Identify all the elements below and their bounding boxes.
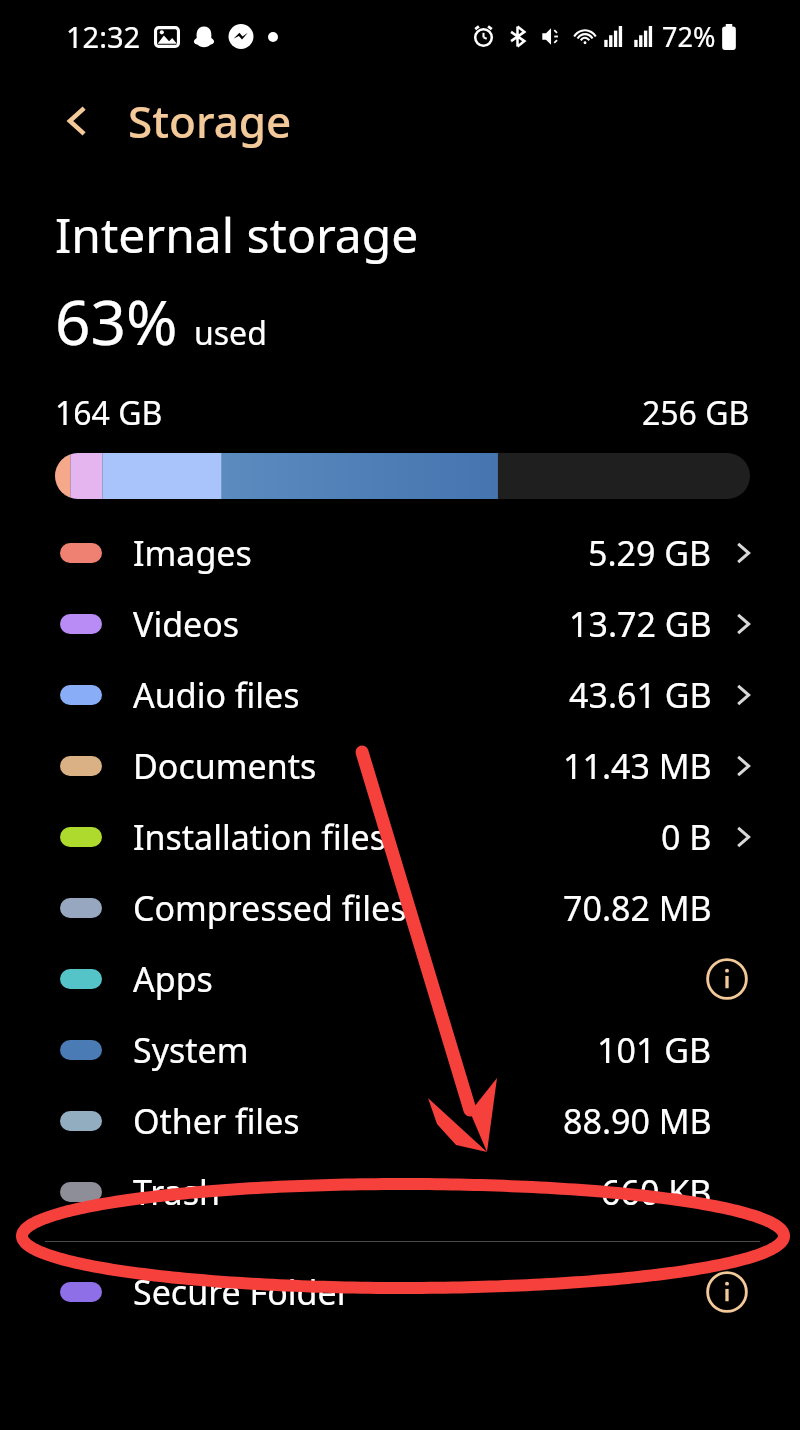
staticText: 88.90 MB <box>563 1098 712 1144</box>
staticText: Secure Folder <box>133 1269 351 1315</box>
staticText: 0 B <box>661 814 712 860</box>
staticText: Videos <box>133 601 240 647</box>
staticText: Other files <box>133 1098 300 1144</box>
button[interactable]: Documents <box>0 730 800 801</box>
staticText: Internal storage <box>55 202 419 267</box>
staticText: Audio files <box>133 672 300 718</box>
button[interactable]: Compressed files <box>0 872 800 943</box>
button[interactable]: System <box>0 1014 800 1085</box>
staticText: System <box>133 1027 249 1073</box>
staticText: 660 KB <box>601 1169 712 1215</box>
staticText: 63% <box>55 279 178 363</box>
button[interactable]: Apps <box>0 943 800 1014</box>
staticText: 72% <box>662 18 716 55</box>
button[interactable]: Info about Apps <box>700 952 754 1006</box>
staticText: Trash <box>133 1169 220 1215</box>
staticText: 70.82 MB <box>563 885 712 931</box>
staticText: 13.72 GB <box>569 601 712 647</box>
staticText: Installation files <box>133 814 386 860</box>
staticText: Compressed files <box>133 885 407 931</box>
staticText: Storage <box>128 91 292 151</box>
button[interactable]: Images <box>0 517 800 588</box>
button[interactable]: Secure Folder <box>0 1256 800 1327</box>
staticText: 101 GB <box>597 1027 712 1073</box>
button[interactable]: Back <box>50 93 106 149</box>
button[interactable]: Installation files <box>0 801 800 872</box>
staticText: 5.29 GB <box>588 530 712 576</box>
button[interactable]: Audio files <box>0 659 800 730</box>
button[interactable]: Info about Secure Folder <box>700 1265 754 1319</box>
staticText: used <box>194 311 267 355</box>
staticText: 43.61 GB <box>569 672 712 718</box>
button[interactable]: Trash <box>0 1156 800 1227</box>
button[interactable]: Videos <box>0 588 800 659</box>
staticText: Images <box>133 530 252 576</box>
staticText: 256 GB <box>642 391 750 435</box>
staticText: 12:32 <box>66 17 141 56</box>
staticText: 164 GB <box>55 391 163 435</box>
staticText: Apps <box>133 956 213 1002</box>
button[interactable]: Other files <box>0 1085 800 1156</box>
staticText: 11.43 MB <box>563 743 712 789</box>
staticText: Documents <box>133 743 317 789</box>
